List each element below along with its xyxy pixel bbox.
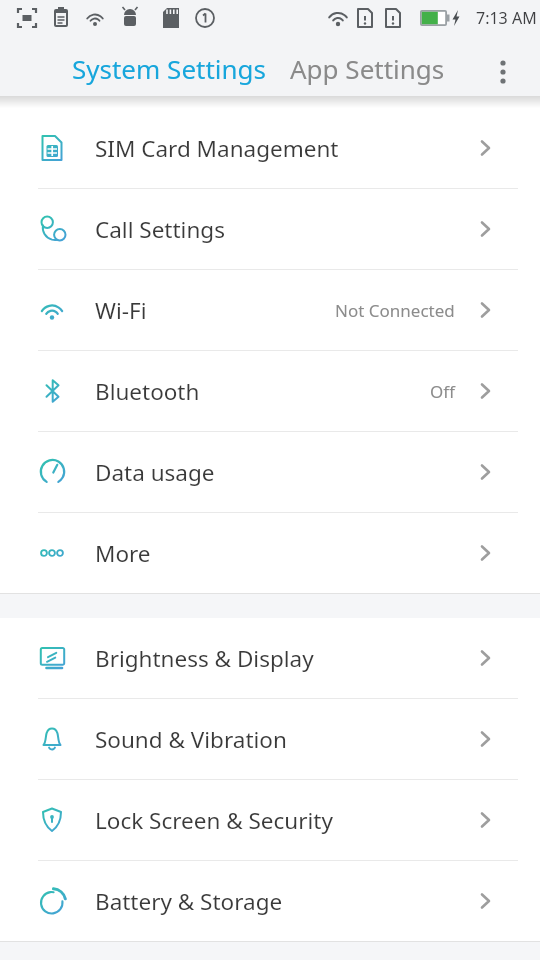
button[interactable]: Call Settings	[0, 189, 540, 269]
staticText: Bluetooth	[95, 376, 200, 407]
button[interactable]: Data usage	[0, 432, 540, 512]
button[interactable]: Bluetooth	[0, 351, 540, 431]
staticText: Off	[430, 380, 455, 403]
staticText: Data usage	[95, 457, 215, 488]
staticText: Sound & Vibration	[95, 724, 287, 755]
button[interactable]: Battery & Storage	[0, 861, 540, 941]
button[interactable]: Lock Screen & Security	[0, 780, 540, 860]
staticText: App Settings	[290, 51, 445, 86]
button[interactable]: SIM Card Management	[0, 108, 540, 188]
staticText: System Settings	[72, 51, 267, 86]
button[interactable]	[488, 57, 518, 87]
button[interactable]: App Settings	[290, 51, 445, 86]
staticText: 7:13 AM	[476, 7, 537, 29]
button[interactable]: Sound & Vibration	[0, 699, 540, 779]
button[interactable]: Wi-Fi	[0, 270, 540, 350]
staticText: Not Connected	[335, 299, 455, 322]
button[interactable]: More	[0, 513, 540, 593]
button[interactable]: System Settings	[72, 51, 267, 86]
button[interactable]: Brightness & Display	[0, 618, 540, 698]
staticText: Wi-Fi	[95, 295, 147, 326]
staticText: More	[95, 538, 151, 569]
staticText: SIM Card Management	[95, 133, 339, 164]
staticText: Battery & Storage	[95, 886, 283, 917]
staticText: Brightness & Display	[95, 643, 314, 674]
staticText: Lock Screen & Security	[95, 805, 333, 836]
staticText: Call Settings	[95, 214, 225, 245]
